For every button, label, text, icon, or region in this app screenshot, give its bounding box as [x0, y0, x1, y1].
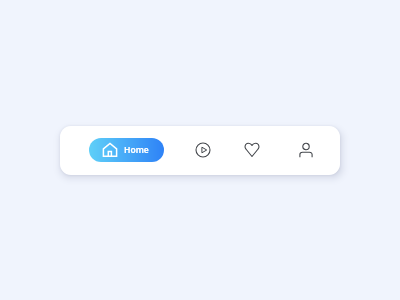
button[interactable]: Favorites	[240, 138, 264, 162]
staticText: Home	[124, 144, 149, 156]
button[interactable]: Profile	[294, 138, 318, 162]
button[interactable]: Play	[191, 138, 215, 162]
button[interactable]: Home	[89, 138, 164, 162]
